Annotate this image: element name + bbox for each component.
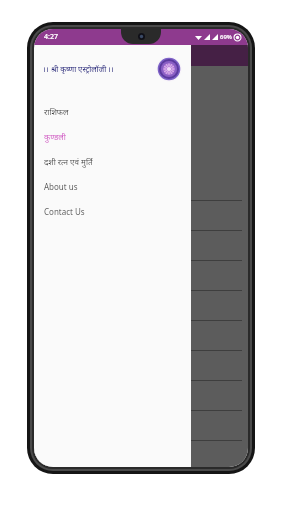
staticText: 4:27 xyxy=(44,32,58,42)
button[interactable] xyxy=(34,351,248,381)
button[interactable]: दशी रत्न एवं मुर्ति xyxy=(34,149,191,174)
staticText: s समाधान। xyxy=(42,104,75,115)
button[interactable]: राशिफल xyxy=(34,99,191,124)
button[interactable]: App logo xyxy=(156,56,182,82)
staticText: राशिफल xyxy=(44,106,69,117)
button[interactable] xyxy=(34,291,248,321)
staticText: nd provide er. xyxy=(42,139,83,161)
button[interactable]: Contact Us xyxy=(34,199,191,224)
staticText: कोई काम नही बन सम्पूर्ण समाधान xyxy=(42,70,94,92)
button[interactable] xyxy=(34,261,248,291)
button[interactable]: कुण्डली xyxy=(34,124,191,149)
button[interactable] xyxy=(34,321,248,351)
button[interactable] xyxy=(34,201,248,231)
button[interactable] xyxy=(34,231,248,261)
button[interactable] xyxy=(34,381,248,411)
button[interactable] xyxy=(34,411,248,441)
staticText: कुण्डली xyxy=(44,131,66,142)
button[interactable] xyxy=(34,171,248,201)
staticText: दशी रत्न एवं मुर्ति xyxy=(44,156,93,167)
staticText: ।। श्री कृष्णा एस्ट्रोलॉजी ।। xyxy=(43,64,156,74)
button[interactable]: About us xyxy=(34,174,191,199)
staticText: About us xyxy=(44,181,78,192)
staticText: Contact Us xyxy=(44,206,85,217)
staticText: 69% xyxy=(220,33,232,41)
